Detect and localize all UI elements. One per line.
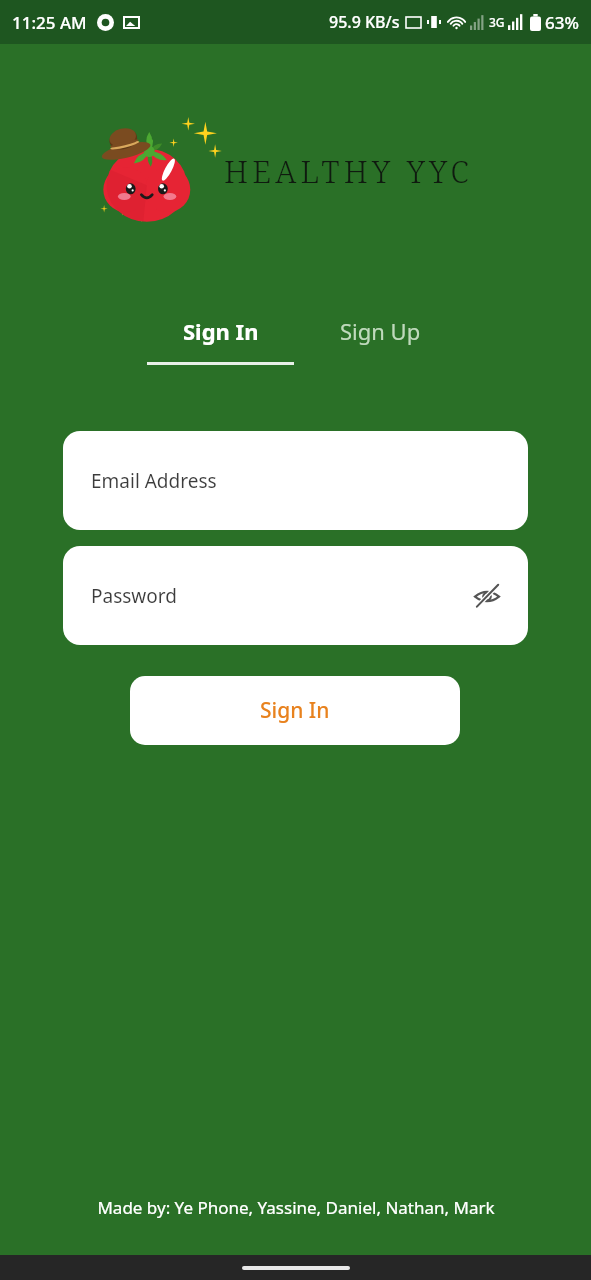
button[interactable]: Sign In xyxy=(173,310,269,352)
staticText: Made by: Ye Phone, Yassine, Daniel, Nath… xyxy=(97,1196,495,1219)
staticText: 11:25 AM xyxy=(12,11,87,34)
staticText: HEALTHY YYC xyxy=(224,150,473,192)
staticText: Sign In xyxy=(183,316,259,346)
button[interactable]: Sign In xyxy=(130,676,460,745)
staticText: 3G xyxy=(489,14,505,30)
button[interactable]: Password xyxy=(63,546,528,645)
staticText: 63% xyxy=(545,11,579,34)
button[interactable]: Show password xyxy=(468,577,506,615)
staticText: Sign Up xyxy=(340,316,421,346)
staticText: Email Address xyxy=(91,468,217,494)
staticText: Sign In xyxy=(260,696,330,725)
staticText: 95.9 KB/s xyxy=(329,11,400,33)
button[interactable]: Email Address xyxy=(63,431,528,530)
button[interactable]: Sign Up xyxy=(330,310,431,352)
staticText: Password xyxy=(91,583,177,609)
